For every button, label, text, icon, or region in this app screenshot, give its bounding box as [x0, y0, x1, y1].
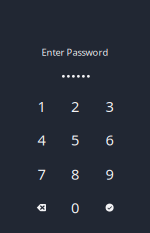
button[interactable]: 2: [58, 90, 92, 123]
staticText: 4: [37, 130, 45, 150]
button[interactable]: 9: [93, 158, 127, 191]
button[interactable]: 0: [58, 191, 92, 224]
staticText: 5: [71, 130, 79, 150]
button[interactable]: 4: [24, 123, 58, 156]
staticText: 3: [106, 96, 114, 116]
staticText: Enter Password: [41, 46, 108, 58]
staticText: 7: [37, 164, 45, 184]
button[interactable]: Confirm: [93, 191, 127, 224]
staticText: 1: [37, 96, 45, 116]
button[interactable]: 8: [58, 158, 92, 191]
button[interactable]: 6: [93, 123, 127, 156]
staticText: 2: [71, 96, 79, 116]
staticText: 0: [71, 198, 79, 217]
button[interactable]: 5: [58, 123, 92, 156]
button[interactable]: 7: [24, 158, 58, 191]
button[interactable]: 1: [24, 90, 58, 123]
staticText: 9: [106, 164, 114, 184]
button[interactable]: 3: [93, 90, 127, 123]
button[interactable]: Delete: [24, 191, 58, 224]
staticText: 6: [106, 130, 114, 150]
staticText: 8: [71, 164, 79, 184]
